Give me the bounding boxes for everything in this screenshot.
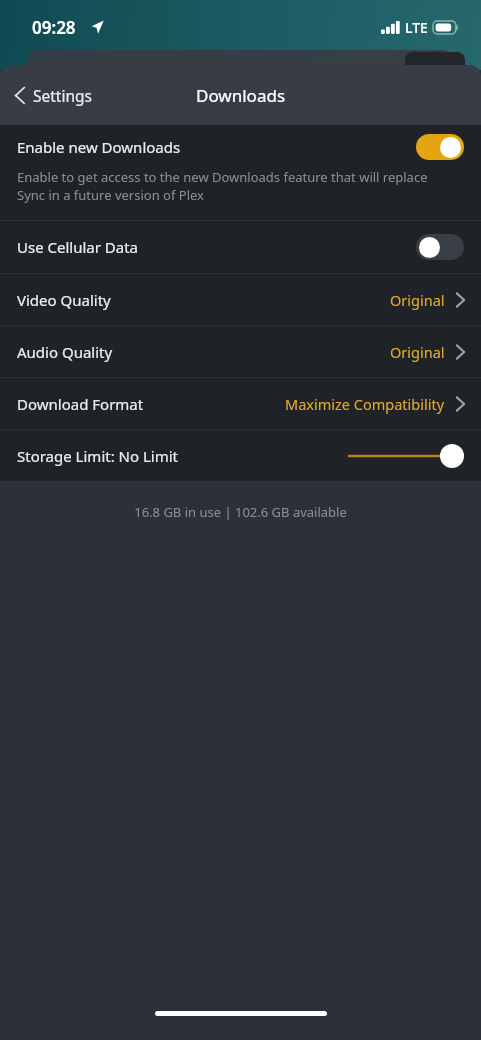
staticText: Settings [33, 85, 92, 106]
staticText: Audio Quality [17, 342, 390, 362]
other: Storage limit slider [348, 442, 464, 470]
staticText: Original [390, 290, 445, 310]
staticText: 09:28 [32, 16, 76, 39]
staticText: Video Quality [17, 290, 390, 310]
button[interactable]: Storage Limit: No Limit [0, 430, 481, 481]
staticText: Enable new Downloads [17, 137, 416, 157]
button[interactable]: Download Format [0, 378, 481, 429]
staticText: 16.8 GB in use | 102.6 GB available [0, 503, 481, 521]
button[interactable]: Enable new Downloads [0, 125, 481, 220]
button[interactable]: Settings [0, 77, 102, 114]
button[interactable]: Video Quality [0, 274, 481, 325]
staticText: Downloads [196, 84, 286, 107]
button[interactable]: Audio Quality [0, 326, 481, 377]
staticText: Original [390, 342, 445, 362]
button[interactable]: Toggle on [416, 134, 464, 160]
staticText: Maximize Compatibility [285, 394, 445, 414]
staticText: Use Cellular Data [17, 237, 416, 257]
staticText: Download Format [17, 394, 285, 414]
staticText: Enable to get access to the new Download… [17, 168, 439, 204]
staticText: LTE [405, 18, 428, 37]
staticText: Storage Limit: No Limit [17, 446, 348, 466]
button[interactable]: Use Cellular Data [0, 221, 481, 273]
button[interactable]: Toggle off [416, 234, 464, 260]
